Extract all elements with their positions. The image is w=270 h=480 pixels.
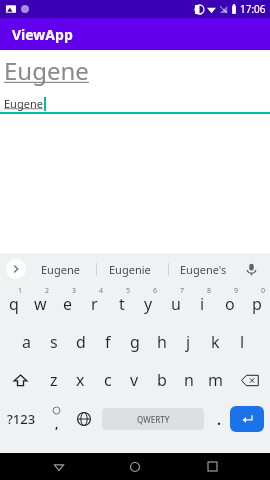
staticText: ViewApp xyxy=(12,25,73,44)
staticText: d xyxy=(76,331,86,353)
button[interactable]: Voice input xyxy=(240,258,262,280)
staticText: u xyxy=(171,293,181,315)
button[interactable]: Eugene's xyxy=(171,253,235,285)
staticText: p xyxy=(252,293,262,315)
staticText: q xyxy=(9,293,19,315)
staticText: z xyxy=(50,369,58,391)
staticText: e xyxy=(63,293,73,315)
staticText: QWERTY xyxy=(137,414,170,425)
staticText: . xyxy=(217,410,221,429)
staticText: h xyxy=(157,331,167,353)
button[interactable]: Eugene xyxy=(0,94,270,112)
button[interactable]: ?123 xyxy=(0,399,42,439)
button[interactable]: Recent apps xyxy=(194,453,230,480)
button[interactable]: Emoji and comma xyxy=(42,399,70,439)
staticText: 17:06 xyxy=(240,2,266,16)
button[interactable]: QWERTY xyxy=(102,408,204,430)
button[interactable]: a xyxy=(13,323,40,361)
button[interactable]: s xyxy=(40,323,67,361)
button[interactable]: r xyxy=(81,285,108,323)
button[interactable]: y xyxy=(135,285,162,323)
button[interactable]: Enter xyxy=(230,406,264,432)
button[interactable]: i xyxy=(189,285,216,323)
button[interactable]: Change keyboard language xyxy=(70,399,98,439)
button[interactable]: q xyxy=(0,285,27,323)
staticText: o xyxy=(225,293,235,315)
staticText: i xyxy=(200,293,205,315)
button[interactable]: Back xyxy=(41,453,77,480)
staticText: g xyxy=(130,331,140,353)
button[interactable]: w xyxy=(27,285,54,323)
staticText: 3 xyxy=(72,286,77,296)
button[interactable]: e xyxy=(54,285,81,323)
staticText: m xyxy=(208,369,223,391)
staticText: 2 xyxy=(45,286,50,296)
button[interactable]: Eugenie xyxy=(98,253,162,285)
staticText: l xyxy=(240,331,245,353)
staticText: r xyxy=(91,293,98,315)
button[interactable]: d xyxy=(67,323,94,361)
staticText: w xyxy=(34,293,47,315)
staticText: 6 xyxy=(153,286,158,296)
staticText: n xyxy=(184,369,194,391)
staticText: t xyxy=(119,293,125,315)
button[interactable]: f xyxy=(94,323,121,361)
button[interactable]: c xyxy=(94,361,121,399)
button[interactable]: m xyxy=(202,361,229,399)
staticText: 8 xyxy=(207,286,212,296)
button[interactable]: Eugene xyxy=(28,253,92,285)
staticText: k xyxy=(211,331,220,353)
button[interactable]: b xyxy=(148,361,175,399)
staticText: 0 xyxy=(261,286,266,296)
staticText: Eugene's xyxy=(180,262,227,277)
button[interactable]: p xyxy=(243,285,270,323)
staticText: a xyxy=(22,331,31,353)
staticText: b xyxy=(157,369,167,391)
staticText: 5 xyxy=(126,286,131,296)
staticText: ?123 xyxy=(7,410,36,428)
staticText: Eugenie xyxy=(109,262,151,277)
button[interactable]: k xyxy=(202,323,229,361)
button[interactable]: Home xyxy=(117,453,153,480)
staticText: , xyxy=(55,415,59,431)
staticText: Eugene xyxy=(4,96,43,111)
staticText: 4 xyxy=(99,286,104,296)
button[interactable]: x xyxy=(67,361,94,399)
button[interactable]: h xyxy=(148,323,175,361)
button[interactable]: . xyxy=(208,399,230,439)
staticText: 1 xyxy=(18,286,23,296)
staticText: f xyxy=(105,331,111,353)
staticText: Eugene xyxy=(4,54,89,87)
staticText: Eugene xyxy=(41,262,80,277)
button[interactable]: Shift xyxy=(0,361,40,399)
button[interactable]: n xyxy=(175,361,202,399)
button[interactable]: Expand toolbar xyxy=(6,259,26,279)
button[interactable]: g xyxy=(121,323,148,361)
staticText: c xyxy=(104,369,112,391)
staticText: j xyxy=(186,331,191,353)
button[interactable]: u xyxy=(162,285,189,323)
staticText: v xyxy=(130,369,139,391)
staticText: x xyxy=(76,369,85,391)
button[interactable]: t xyxy=(108,285,135,323)
staticText: y xyxy=(144,293,153,315)
button[interactable]: Backspace xyxy=(229,361,270,399)
staticText: s xyxy=(50,331,58,353)
staticText: 7 xyxy=(180,286,185,296)
staticText: 9 xyxy=(234,286,239,296)
button[interactable]: z xyxy=(40,361,67,399)
button[interactable]: l xyxy=(229,323,256,361)
button[interactable]: j xyxy=(175,323,202,361)
button[interactable]: v xyxy=(121,361,148,399)
button[interactable]: o xyxy=(216,285,243,323)
